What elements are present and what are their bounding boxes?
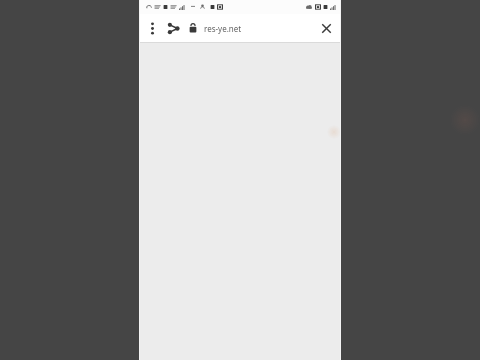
button[interactable]: Share: [162, 16, 184, 40]
button[interactable]: More options: [142, 16, 162, 40]
staticText: res-ye.net: [204, 23, 314, 34]
button[interactable]: Connection is secure: [186, 16, 200, 40]
button[interactable]: Close: [314, 16, 338, 40]
